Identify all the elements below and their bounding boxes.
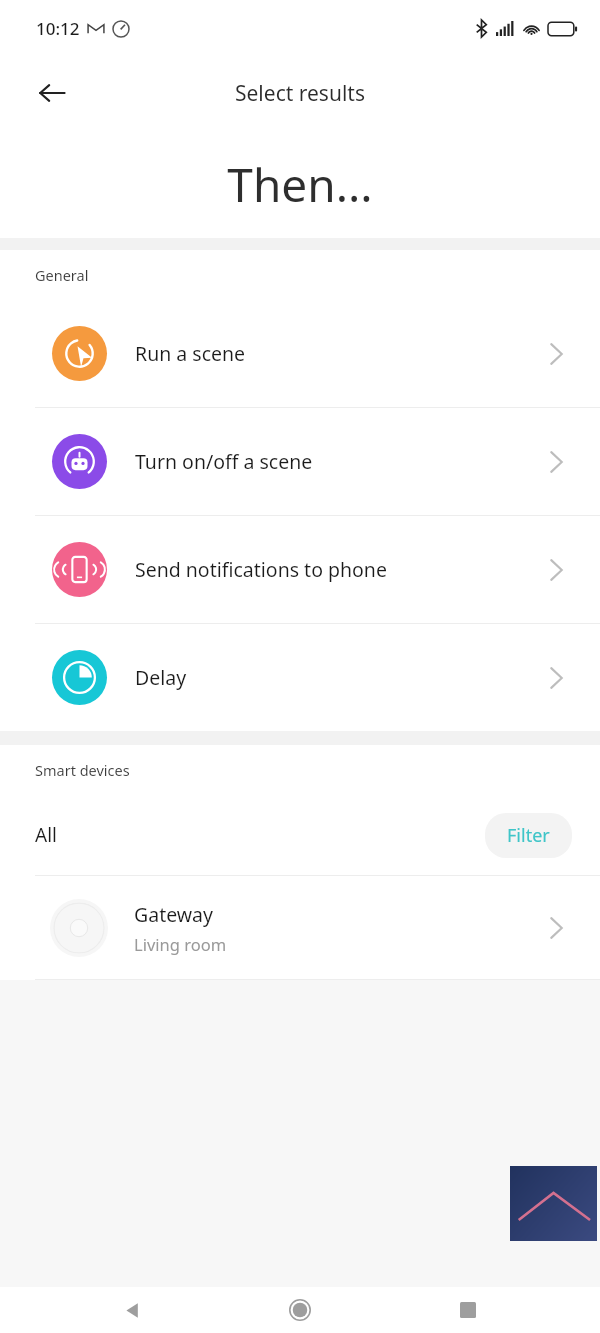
button[interactable]: Filter — [485, 813, 572, 858]
button[interactable]: Send notifications to phone — [0, 516, 600, 623]
staticText: Delay — [135, 664, 549, 691]
staticText: 10:12 — [36, 17, 80, 40]
button[interactable]: Recents — [446, 1288, 490, 1332]
staticText: Smart devices — [35, 760, 130, 780]
staticText: Living room — [134, 933, 227, 955]
staticText: Gateway — [134, 901, 213, 928]
staticText: Then... — [227, 153, 373, 216]
staticText: Select results — [235, 79, 365, 108]
button[interactable]: Run a scene — [0, 300, 600, 407]
button[interactable]: Delay — [0, 624, 600, 731]
staticText: Send notifications to phone — [135, 556, 549, 583]
staticText: Turn on/off a scene — [135, 448, 549, 475]
button[interactable]: Turn on/off a scene — [0, 408, 600, 515]
staticText: General — [35, 265, 89, 285]
staticText: All — [35, 822, 485, 848]
button[interactable]: Back — [110, 1288, 154, 1332]
staticText: Filter — [507, 823, 550, 848]
button[interactable]: Back — [26, 67, 78, 119]
button[interactable]: Floating widget — [510, 1166, 597, 1241]
staticText: Run a scene — [135, 340, 549, 367]
button[interactable]: Gateway — [0, 876, 600, 979]
button[interactable]: Home — [278, 1288, 322, 1332]
